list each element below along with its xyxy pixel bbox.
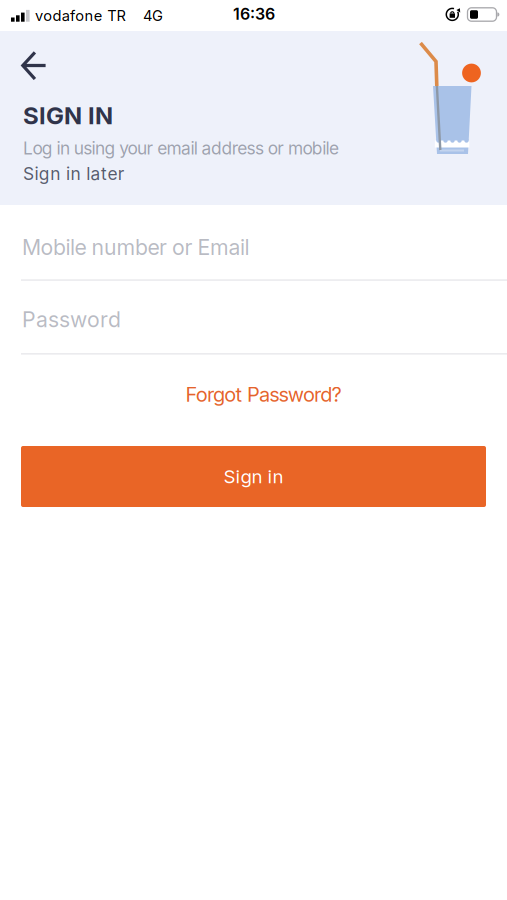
button[interactable]: Back	[12, 44, 56, 88]
button[interactable]: Mobile number or Email	[21, 235, 507, 282]
staticText: Log in using your email address or mobil…	[23, 138, 339, 158]
staticText: Forgot Password?	[185, 383, 341, 406]
staticText: Mobile number or Email	[22, 235, 249, 260]
staticText: 16:36	[233, 4, 275, 23]
button[interactable]: Forgot Password?	[10, 383, 507, 406]
staticText: Password	[22, 307, 121, 332]
staticText: Sign in	[223, 465, 283, 487]
button[interactable]: Sign in	[21, 446, 486, 507]
staticText: SIGN IN	[23, 101, 113, 130]
button[interactable]: Password	[21, 307, 507, 355]
staticText: Sign in later	[23, 163, 125, 184]
staticText: 4G	[143, 7, 163, 24]
staticText: vodafone TR	[35, 7, 125, 24]
button[interactable]: Sign in later	[23, 163, 125, 184]
